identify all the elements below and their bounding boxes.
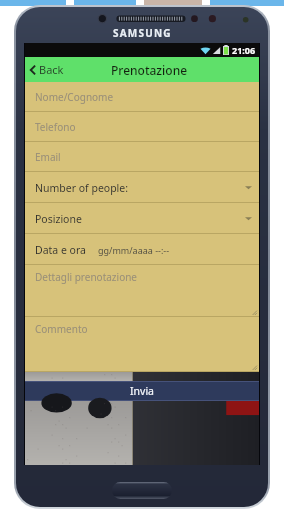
staticText: 21:06 <box>232 44 256 56</box>
button[interactable]: Email <box>25 142 259 172</box>
staticText: Data e ora <box>35 243 86 257</box>
button[interactable]: Data e ora <box>25 234 259 265</box>
button[interactable]: Invia <box>25 381 259 401</box>
staticText: gg/mm/aaaa --:-- <box>98 244 170 256</box>
staticText: Back <box>39 62 64 77</box>
staticText: Nome/Cognome <box>35 90 114 104</box>
button[interactable]: Commento <box>25 317 259 372</box>
staticText: Telefono <box>35 120 76 134</box>
staticText: Prenotazione <box>111 62 188 78</box>
staticText: Email <box>35 150 61 164</box>
staticText: Invia <box>130 384 154 398</box>
staticText: SAMSUNG <box>113 26 172 40</box>
staticText: Posizione <box>35 212 82 226</box>
staticText: Dettagli prenotazione <box>35 270 137 284</box>
staticText: Commento <box>35 322 88 336</box>
button[interactable]: Nome/Cognome <box>25 82 259 112</box>
button[interactable]: Number of people: <box>25 172 259 203</box>
button[interactable]: Telefono <box>25 112 259 142</box>
button[interactable]: Back <box>30 62 64 77</box>
staticText: Number of people: <box>35 181 129 195</box>
button[interactable]: Posizione <box>25 203 259 234</box>
button[interactable]: Dettagli prenotazione <box>25 265 259 317</box>
button[interactable]: Home <box>112 482 172 499</box>
